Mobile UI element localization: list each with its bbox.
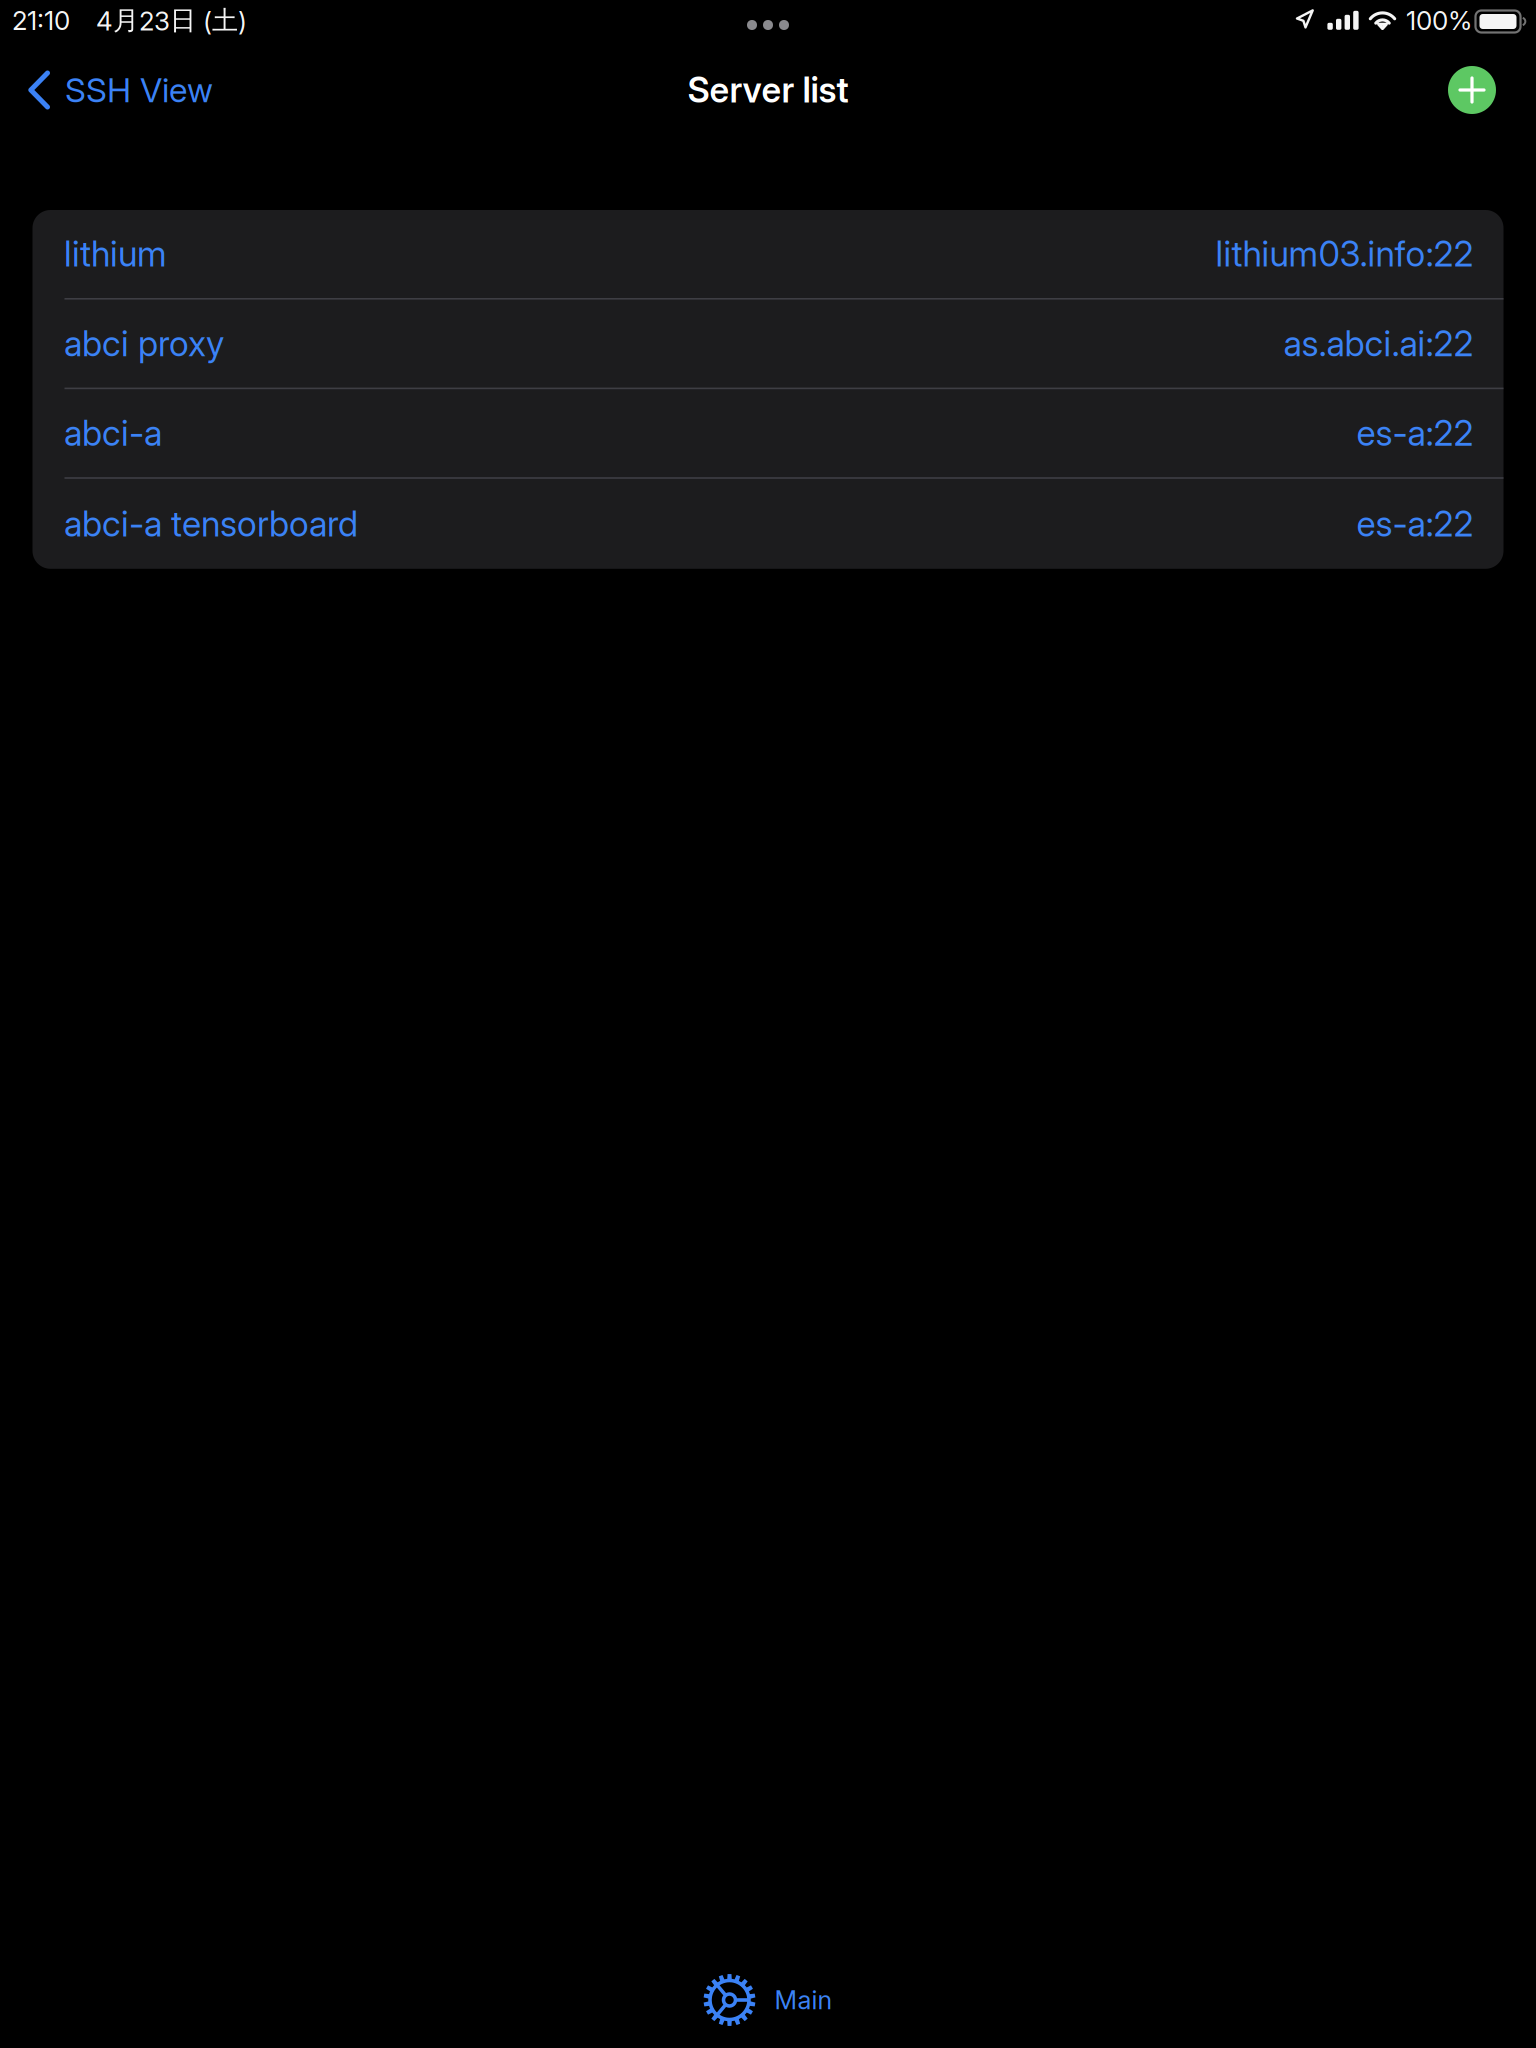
- staticText: lithium03.info:22: [1215, 233, 1473, 275]
- staticText: Main: [774, 1985, 832, 2015]
- staticText: es-a:22: [1356, 503, 1473, 545]
- button[interactable]: Main: [703, 1952, 832, 2048]
- staticText: SSH View: [65, 70, 213, 110]
- staticText: as.abci.ai:22: [1283, 323, 1473, 364]
- staticText: es-a:22: [1356, 412, 1473, 454]
- staticText: 100%: [1406, 5, 1472, 36]
- staticText: lithium: [64, 233, 167, 275]
- staticText: Server list: [687, 69, 848, 111]
- button[interactable]: lithium: [32, 210, 1503, 300]
- staticText: 21:10: [12, 5, 70, 36]
- button[interactable]: abci-a: [32, 389, 1503, 479]
- staticText: 4月23日 (土): [96, 4, 247, 37]
- button[interactable]: abci-a tensorboard: [32, 479, 1503, 569]
- button[interactable]: abci proxy: [32, 300, 1503, 389]
- staticText: abci-a: [64, 412, 162, 454]
- button[interactable]: Add server: [1428, 50, 1536, 130]
- staticText: abci-a tensorboard: [64, 503, 358, 545]
- button[interactable]: SSH View: [0, 50, 233, 130]
- staticText: abci proxy: [64, 323, 224, 364]
